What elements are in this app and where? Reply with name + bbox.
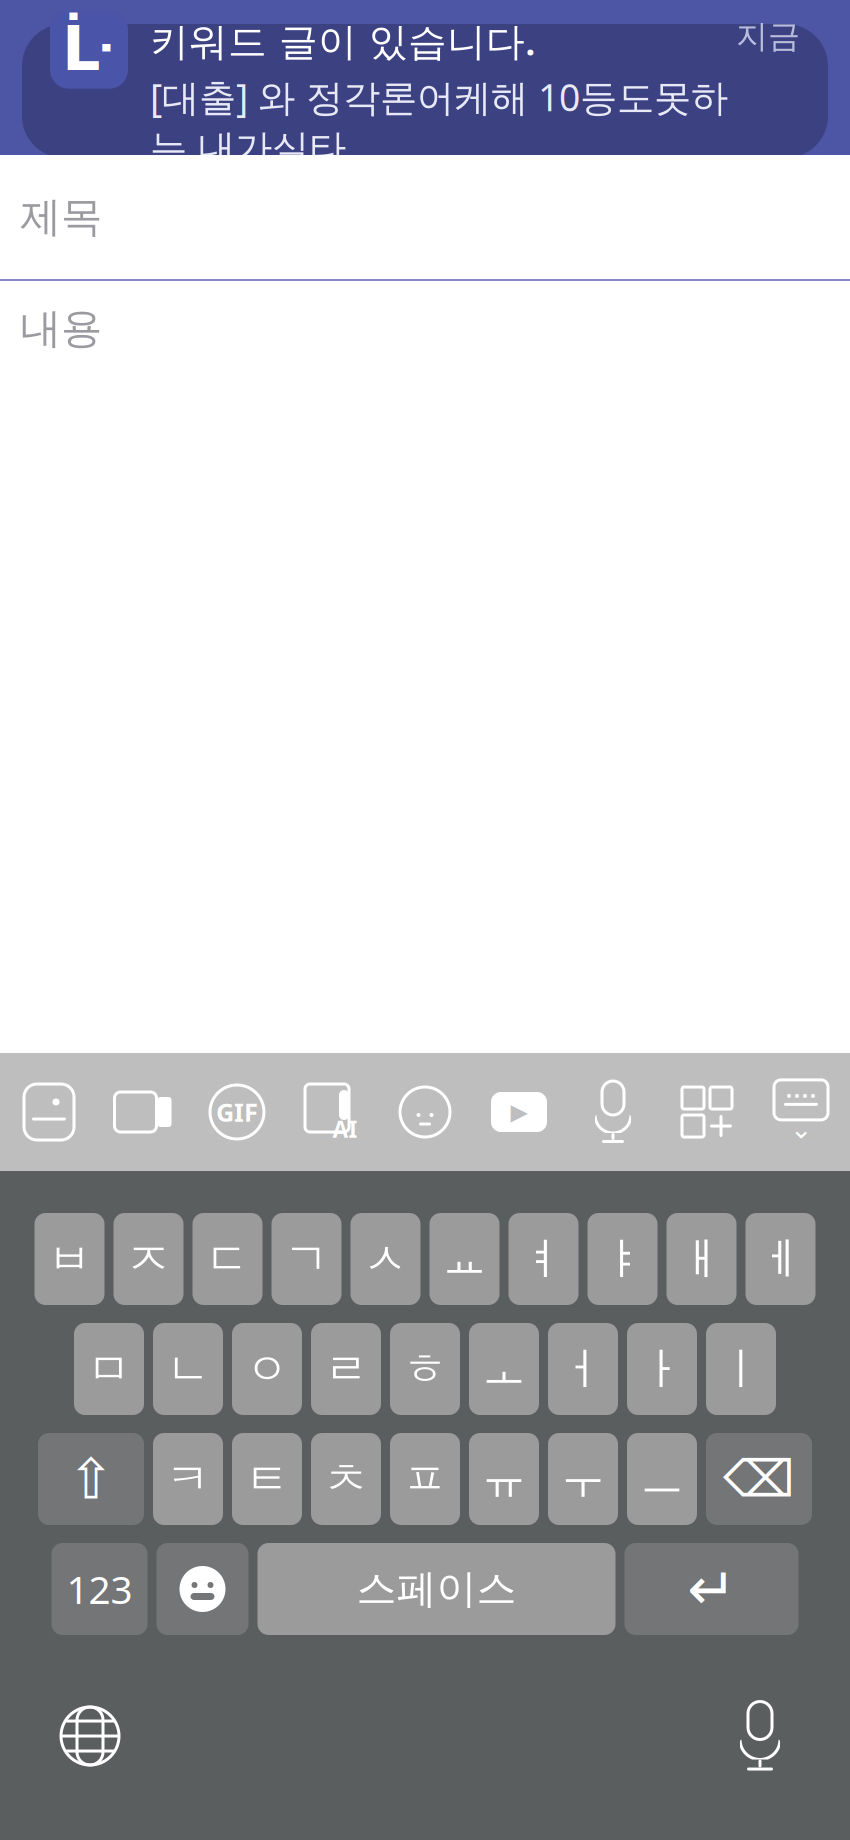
staticText: ㅕ	[521, 1232, 565, 1286]
button[interactable]: Dictation	[714, 1690, 806, 1782]
button[interactable]: ㅌ	[232, 1433, 302, 1525]
button[interactable]: ㅓ	[548, 1323, 618, 1415]
button[interactable]: Emoji	[156, 1543, 248, 1635]
button[interactable]: ㅑ	[587, 1213, 657, 1305]
staticText: ㅅ	[363, 1232, 407, 1286]
button[interactable]: Key	[38, 1433, 144, 1525]
button[interactable]: Hide keyboard	[754, 1053, 848, 1171]
staticText: 스페이스	[356, 1564, 516, 1613]
button[interactable]: AI draw	[284, 1053, 378, 1171]
button[interactable]: 내용	[0, 281, 850, 354]
button[interactable]: ㅏ	[627, 1323, 697, 1415]
button[interactable]: ㅎ	[390, 1323, 460, 1415]
staticText: ㅗ	[482, 1342, 526, 1396]
staticText: 키워드 글이 있습니다.	[150, 15, 536, 66]
staticText: ᒹ	[62, 15, 116, 84]
button[interactable]: ᒹ	[22, 24, 828, 158]
staticText: ⇧	[67, 1447, 114, 1511]
button[interactable]: ㅠ	[469, 1433, 539, 1525]
staticText: ㅜ	[561, 1452, 605, 1506]
staticText: ⌄	[790, 1114, 812, 1144]
staticText: ㅂ	[47, 1232, 91, 1286]
button[interactable]: Return	[624, 1543, 798, 1635]
button[interactable]: ㅂ	[34, 1213, 104, 1305]
staticText: ㅛ	[442, 1232, 486, 1286]
button[interactable]: GIF	[190, 1053, 284, 1171]
button[interactable]: ㅗ	[469, 1323, 539, 1415]
staticText: ㅈ	[126, 1232, 170, 1286]
staticText: 지금	[736, 17, 800, 56]
staticText: 11:08	[62, 23, 179, 83]
button[interactable]: Video link	[472, 1053, 566, 1171]
button[interactable]: ㅜ	[548, 1433, 618, 1525]
staticText: ↵	[687, 1556, 736, 1622]
staticText: ㅌ	[245, 1452, 289, 1506]
button[interactable]: ㅇ	[232, 1323, 302, 1415]
button[interactable]: ㄱ	[271, 1213, 341, 1305]
button[interactable]: ㅋ	[153, 1433, 223, 1525]
staticText: [대출] 와 정각론어케해 10등도못하는 내가실타..	[150, 72, 728, 171]
staticText: ▶	[510, 1099, 527, 1125]
staticText: ㅇ	[245, 1342, 289, 1396]
staticText: 88	[757, 34, 789, 72]
button[interactable]: ㅣ	[706, 1323, 776, 1415]
button[interactable]: Sticker	[378, 1053, 472, 1171]
button[interactable]: Video	[96, 1053, 190, 1171]
staticText: ㅓ	[561, 1342, 605, 1396]
staticText: ㅁ	[87, 1342, 131, 1396]
staticText: ⌫	[723, 1450, 795, 1508]
staticText: ㅡ	[640, 1452, 684, 1506]
button[interactable]: Voice	[566, 1053, 660, 1171]
staticText: ㅐ	[679, 1232, 723, 1286]
button[interactable]: ㅛ	[429, 1213, 499, 1305]
button[interactable]: ㄴ	[153, 1323, 223, 1415]
staticText: 제목	[20, 192, 102, 242]
button[interactable]: ㄷ	[192, 1213, 262, 1305]
staticText: ㅏ	[640, 1342, 684, 1396]
staticText: 내용	[20, 303, 102, 354]
button[interactable]: ㅈ	[113, 1213, 183, 1305]
button[interactable]: Photo	[2, 1053, 96, 1171]
staticText: ㅣ	[719, 1342, 763, 1396]
button[interactable]: ㅕ	[508, 1213, 578, 1305]
staticText: ㅎ	[403, 1342, 447, 1396]
staticText: ㄴ	[166, 1342, 210, 1396]
staticText: AI	[332, 1114, 357, 1144]
button[interactable]: 스페이스	[257, 1543, 615, 1635]
button[interactable]: 제목	[0, 155, 850, 279]
button[interactable]: Change keyboard	[44, 1690, 136, 1782]
staticText: GIF	[216, 1095, 258, 1129]
button[interactable]: ㅐ	[666, 1213, 736, 1305]
button[interactable]: ㅊ	[311, 1433, 381, 1525]
staticText: ㅠ	[482, 1452, 526, 1506]
staticText: ㅊ	[324, 1452, 368, 1506]
staticText: ㅍ	[403, 1452, 447, 1506]
staticText: ㄱ	[284, 1232, 328, 1286]
button[interactable]: ㄹ	[311, 1323, 381, 1415]
staticText: ㅔ	[758, 1232, 802, 1286]
button[interactable]: Key	[706, 1433, 812, 1525]
button[interactable]: More	[660, 1053, 754, 1171]
button[interactable]: 123	[51, 1543, 147, 1635]
button[interactable]: ㅅ	[350, 1213, 420, 1305]
button[interactable]: ㅡ	[627, 1433, 697, 1525]
button[interactable]: ㅁ	[74, 1323, 144, 1415]
staticText: ㅋ	[166, 1452, 210, 1506]
staticText: ㅑ	[600, 1232, 644, 1286]
staticText: ㄹ	[324, 1342, 368, 1396]
staticText: ㄷ	[205, 1232, 249, 1286]
button[interactable]: ㅍ	[390, 1433, 460, 1525]
staticText: 123	[66, 1563, 132, 1615]
button[interactable]: ㅔ	[745, 1213, 815, 1305]
